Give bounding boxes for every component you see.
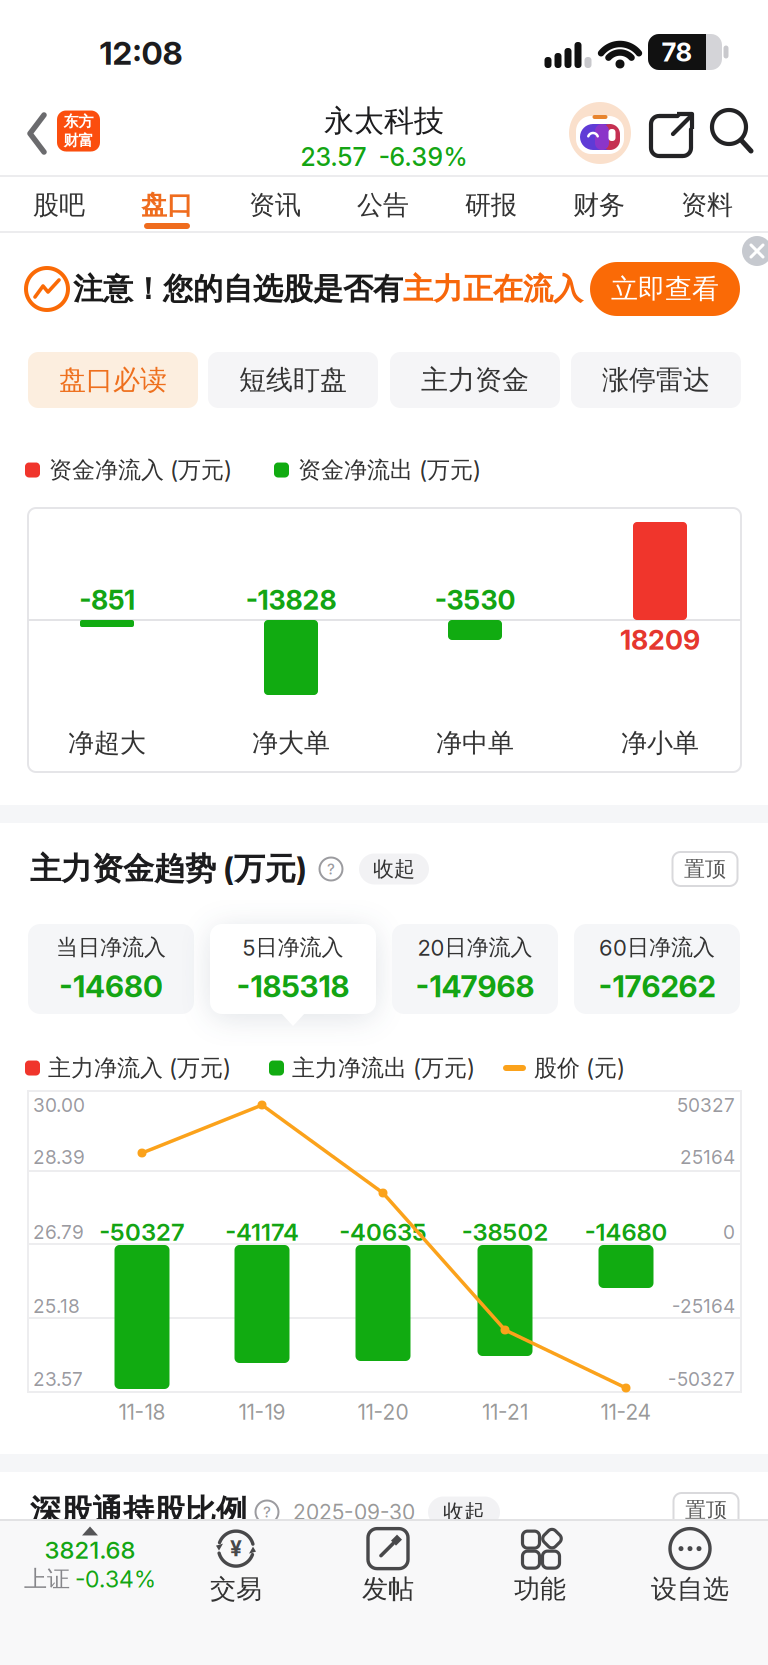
- staticText: 永太科技: [324, 102, 444, 140]
- button[interactable]: 研报: [446, 178, 536, 232]
- button[interactable]: 盘口必读: [28, 352, 198, 408]
- staticText: 3821.68: [44, 1535, 135, 1564]
- button[interactable]: 置顶: [672, 852, 737, 886]
- staticText: 净超大: [68, 727, 146, 759]
- button[interactable]: 收起: [428, 1496, 500, 1527]
- button[interactable]: 5日净流入: [210, 924, 376, 1014]
- staticText: 注意！您的自选股是否有: [73, 270, 403, 308]
- staticText: 功能: [514, 1573, 566, 1605]
- staticText: 涨停雷达: [602, 363, 710, 397]
- staticText: 60日净流入: [599, 933, 715, 961]
- staticText: 盘口: [141, 189, 193, 221]
- staticText: 30.00: [33, 1093, 85, 1116]
- button[interactable]: 立即查看: [590, 262, 740, 316]
- staticText: -14680: [59, 968, 163, 1004]
- staticText: 5日净流入: [242, 933, 343, 961]
- staticText: 11-18: [118, 1399, 165, 1425]
- staticText: 东方: [63, 112, 93, 131]
- staticText: 2025-09-30: [293, 1499, 415, 1525]
- staticText: 收起: [443, 1499, 485, 1525]
- staticText: 20日净流入: [417, 933, 532, 961]
- staticText: 发帖: [362, 1573, 414, 1605]
- staticText: 财富: [63, 131, 93, 150]
- button[interactable]: 涨停雷达: [571, 352, 741, 408]
- staticText: -3530: [434, 584, 515, 616]
- staticText: 11-20: [357, 1399, 408, 1425]
- staticText: 收起: [373, 856, 415, 882]
- staticText: 净中单: [436, 727, 514, 759]
- button[interactable]: 置顶: [673, 1493, 738, 1527]
- staticText: -13828: [245, 584, 336, 616]
- staticText: 0: [723, 1220, 735, 1243]
- button[interactable]: Close: [742, 236, 768, 266]
- staticText: 深股通持股比例: [30, 1491, 247, 1531]
- staticText: 资金净流入 (万元): [49, 455, 232, 484]
- staticText: 26.79: [33, 1220, 84, 1243]
- staticText: 净小单: [621, 727, 699, 759]
- staticText: 盘口必读: [59, 363, 167, 397]
- button[interactable]: 60日净流入: [574, 924, 740, 1014]
- button[interactable]: 3821.68: [24, 1526, 156, 1593]
- button[interactable]: Share: [649, 107, 697, 157]
- staticText: 主力正在流入: [403, 270, 583, 308]
- staticText: -147968: [415, 968, 534, 1004]
- button[interactable]: 当日净流入: [28, 924, 194, 1014]
- staticText: 主力净流出 (万元): [292, 1053, 475, 1082]
- staticText: 28.39: [33, 1145, 85, 1168]
- staticText: 资料: [681, 189, 733, 221]
- staticText: 股吧: [33, 189, 85, 221]
- staticText: ¥: [230, 1536, 242, 1561]
- button[interactable]: 盘口: [122, 178, 212, 232]
- staticText: 主力资金趋势 (万元): [30, 849, 307, 889]
- staticText: -185318: [236, 968, 349, 1004]
- staticText: 主力资金: [421, 363, 529, 397]
- staticText: 11-19: [238, 1399, 285, 1425]
- staticText: 50327: [677, 1093, 735, 1116]
- staticText: 短线盯盘: [239, 363, 347, 397]
- staticText: -6.39%: [378, 142, 467, 172]
- staticText: -40635: [339, 1217, 427, 1246]
- button[interactable]: 财务: [554, 178, 644, 232]
- button[interactable]: Back: [25, 112, 51, 156]
- button[interactable]: 智能助手: [569, 102, 631, 164]
- staticText: 主力净流入 (万元): [48, 1053, 231, 1082]
- staticText: 11-21: [482, 1399, 528, 1425]
- button[interactable]: 股吧: [14, 178, 104, 232]
- staticText: 置顶: [684, 856, 726, 882]
- button[interactable]: 功能: [514, 1525, 566, 1605]
- button[interactable]: 资讯: [230, 178, 320, 232]
- button[interactable]: 短线盯盘: [208, 352, 378, 408]
- staticText: -176262: [598, 968, 715, 1004]
- staticText: -50327: [99, 1217, 185, 1246]
- staticText: 资讯: [249, 189, 301, 221]
- button[interactable]: 资料: [662, 178, 752, 232]
- staticText: 公告: [357, 189, 409, 221]
- staticText: -14680: [584, 1217, 667, 1246]
- staticText: -25164: [672, 1294, 735, 1317]
- staticText: 净大单: [252, 727, 330, 759]
- staticText: -0.34%: [75, 1565, 156, 1593]
- staticText: 资金净流出 (万元): [298, 455, 481, 484]
- staticText: 上证: [24, 1564, 70, 1593]
- button[interactable]: 收起: [359, 853, 429, 884]
- staticText: 置顶: [685, 1497, 727, 1523]
- button[interactable]: 设自选: [651, 1525, 729, 1605]
- staticText: 交易: [210, 1573, 262, 1605]
- staticText: 23.57: [300, 142, 366, 172]
- staticText: 23.57: [33, 1367, 83, 1390]
- staticText: 立即查看: [611, 272, 719, 306]
- button[interactable]: 发帖: [362, 1525, 414, 1605]
- staticText: 设自选: [651, 1573, 729, 1605]
- staticText: -38502: [461, 1217, 548, 1246]
- staticText: ?: [263, 1503, 271, 1521]
- button[interactable]: 公告: [338, 178, 428, 232]
- button[interactable]: 东方财富: [57, 110, 100, 151]
- button[interactable]: 主力资金: [390, 352, 560, 408]
- button[interactable]: Search: [708, 107, 756, 157]
- staticText: 财务: [573, 189, 625, 221]
- button[interactable]: 20日净流入: [392, 924, 558, 1014]
- staticText: 25.18: [33, 1294, 80, 1317]
- staticText: 11-24: [600, 1399, 651, 1425]
- staticText: 当日净流入: [56, 933, 166, 961]
- button[interactable]: ¥: [210, 1525, 262, 1605]
